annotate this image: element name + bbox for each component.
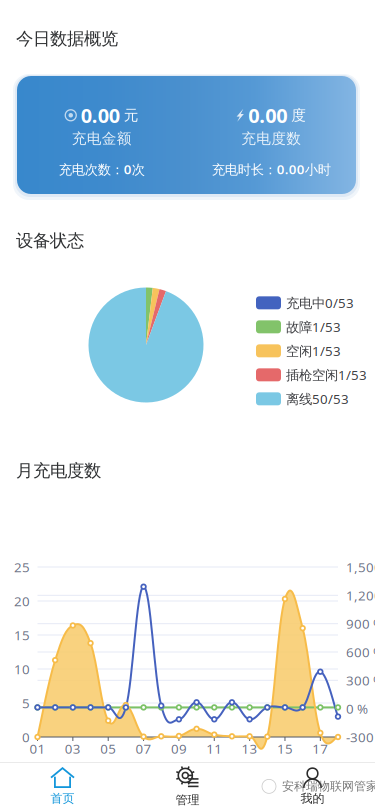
staticText: 900 % <box>346 615 375 632</box>
staticText: 09 <box>171 740 187 757</box>
staticText: 设备状态 <box>16 230 84 251</box>
staticText: 离线50/53 <box>286 390 349 408</box>
staticText: 管理 <box>175 793 199 807</box>
staticText: 故障1/53 <box>286 318 341 336</box>
staticText: 0.00 <box>248 102 287 129</box>
staticText: 度 <box>291 106 306 124</box>
staticText: 插枪空闲1/53 <box>286 366 367 384</box>
staticText: 11 <box>206 740 222 757</box>
staticText: 充电中0/53 <box>286 294 354 312</box>
staticText: 17 <box>312 740 328 757</box>
staticText: 1,500 <box>346 558 375 576</box>
staticText: 600 % <box>346 643 375 661</box>
staticText: -300 <box>346 728 374 746</box>
staticText: 0.00 <box>81 102 120 129</box>
staticText: 300 % <box>346 671 375 689</box>
staticText: 13 <box>242 740 258 757</box>
staticText: 充电金额 <box>72 130 132 148</box>
staticText: 0 % <box>346 700 368 717</box>
staticText: 25 <box>14 558 30 576</box>
staticText: 15 <box>277 740 293 757</box>
staticText: 首页 <box>50 791 74 806</box>
staticText: 07 <box>136 740 152 757</box>
staticText: 充电度数 <box>241 130 301 148</box>
staticText: 0 <box>22 728 30 746</box>
staticText: 10 <box>14 660 30 678</box>
staticText: 今日数据概览 <box>16 28 118 49</box>
staticText: 15 <box>14 626 30 644</box>
staticText: 我的 <box>300 791 324 806</box>
button[interactable]: 我的 <box>250 762 375 812</box>
button[interactable]: 管理 <box>125 762 250 812</box>
staticText: 充电时长：0.00小时 <box>212 160 331 178</box>
staticText: 03 <box>65 740 81 757</box>
staticText: 元 <box>124 106 139 124</box>
staticText: 月充电度数 <box>16 460 101 481</box>
staticText: 20 <box>14 592 30 610</box>
staticText: 空闲1/53 <box>286 342 341 360</box>
staticText: 1,200 <box>346 586 375 604</box>
staticText: 安科瑞物联网管家 <box>282 779 375 794</box>
staticText: 5 <box>22 694 30 712</box>
staticText: 充电次数：0次 <box>59 160 145 178</box>
staticText: 01 <box>29 740 45 757</box>
staticText: 05 <box>100 740 116 757</box>
button[interactable]: 首页 <box>0 762 125 812</box>
